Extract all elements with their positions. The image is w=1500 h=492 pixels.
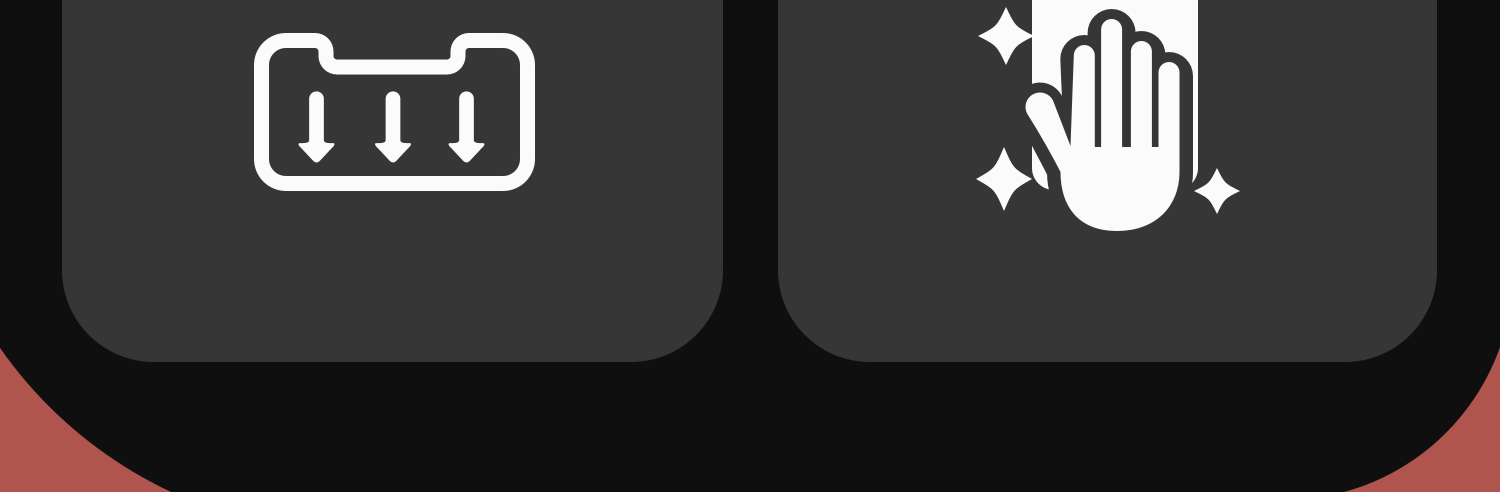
button[interactable]: Clean Display [778, 0, 1437, 362]
button[interactable]: Eject Water [62, 0, 723, 362]
